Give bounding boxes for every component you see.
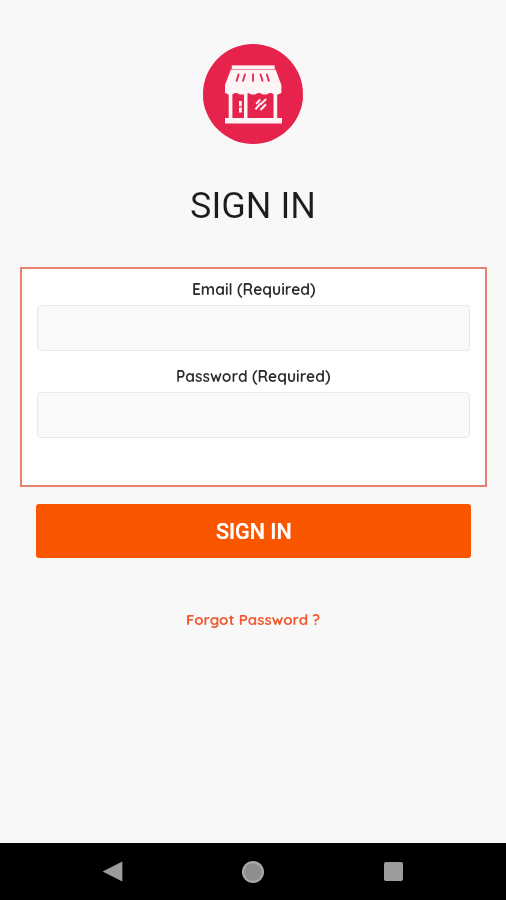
staticText: Email (Required) [192,279,316,298]
button[interactable]: SIGN IN [36,504,471,558]
button[interactable]: Home [225,843,281,900]
staticText: SIGN IN [190,185,316,227]
button[interactable]: Back [84,843,140,900]
button[interactable] [37,305,470,351]
button[interactable]: Forgot Password ? [174,603,333,636]
staticText: Password (Required) [176,366,331,385]
staticText: Forgot Password ? [186,610,321,629]
button[interactable] [37,392,470,438]
staticText: SIGN IN [216,519,292,544]
button[interactable]: Recent apps [365,843,421,900]
